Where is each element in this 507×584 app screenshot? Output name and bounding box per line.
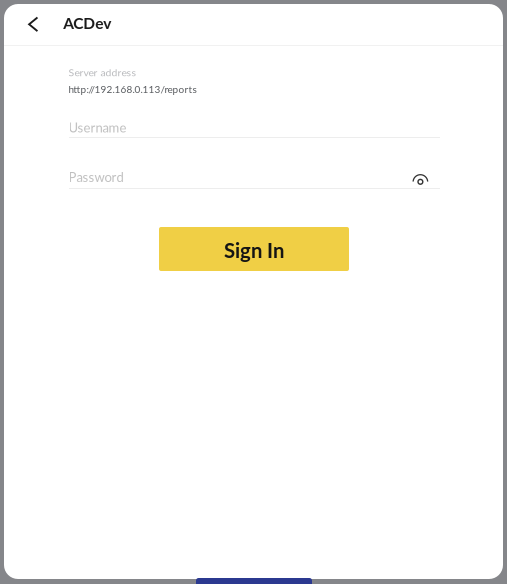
staticText: Password	[69, 169, 124, 185]
staticText: Server address	[69, 66, 137, 78]
staticText: Sign In	[224, 238, 284, 262]
staticText: Username	[69, 119, 127, 135]
button[interactable]: Sign In	[159, 227, 349, 271]
staticText: ACDev	[63, 14, 111, 32]
staticText: http://192.168.0.113/reports	[69, 83, 197, 95]
button[interactable]: Show password	[413, 174, 428, 188]
button[interactable]: Back	[16, 4, 50, 45]
